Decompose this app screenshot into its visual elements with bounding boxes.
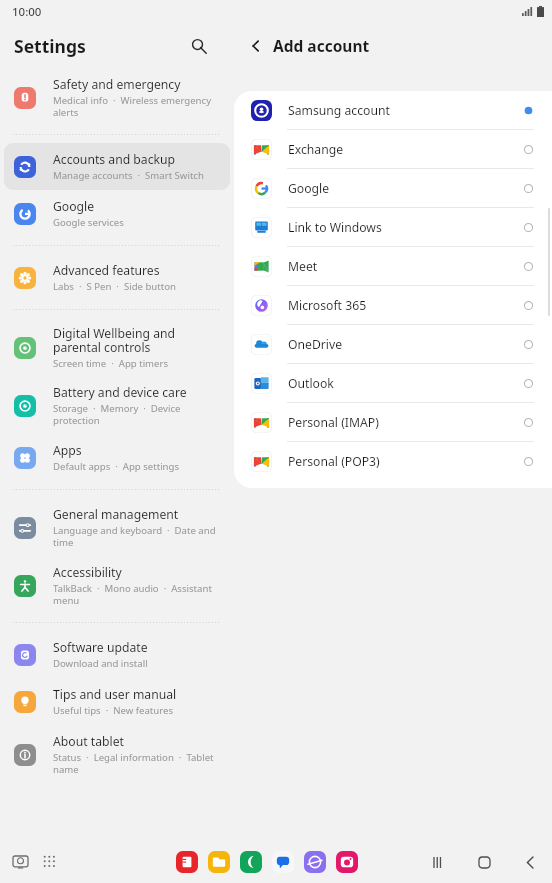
button[interactable]: Microsoft 365 (234, 286, 552, 324)
staticText: Add account (273, 35, 370, 56)
staticText: Meet (288, 258, 318, 275)
button[interactable]: files (208, 851, 230, 873)
button[interactable]: Personal (POP3) (234, 442, 552, 480)
button[interactable]: Safety and emergency (4, 68, 230, 126)
button[interactable]: About tablet (4, 725, 230, 783)
button[interactable]: camera (336, 851, 358, 873)
button[interactable]: Outlook (234, 364, 552, 402)
staticText: Software update (53, 639, 148, 656)
staticText: Language and keyboard · Date and time (53, 524, 222, 549)
staticText: Outlook (288, 375, 334, 392)
button[interactable]: Advanced features (4, 254, 230, 301)
button[interactable]: Tips and user manual (4, 678, 230, 725)
staticText: OneDrive (288, 336, 343, 353)
staticText: Manage accounts · Smart Switch (53, 169, 204, 182)
button[interactable]: Apps (38, 850, 62, 874)
button[interactable]: phone (240, 851, 262, 873)
button[interactable]: Apps (4, 434, 230, 481)
button[interactable]: OneDrive (234, 325, 552, 363)
staticText: Accessibility (53, 564, 122, 581)
staticText: Screen time · App timers (53, 357, 169, 370)
button[interactable]: messages (272, 851, 294, 873)
staticText: Battery and device care (53, 384, 187, 401)
staticText: Google (53, 198, 95, 215)
button[interactable]: Battery and device care (4, 376, 230, 434)
staticText: Personal (POP3) (288, 453, 380, 470)
button[interactable]: Exchange (234, 130, 552, 168)
staticText: Advanced features (53, 262, 160, 279)
staticText: Exchange (288, 141, 344, 158)
button[interactable]: General management (4, 498, 230, 556)
staticText: Safety and emergency (53, 76, 181, 93)
button[interactable]: Personal (IMAP) (234, 403, 552, 441)
staticText: Google (288, 180, 330, 197)
staticText: Settings (14, 34, 86, 58)
staticText: Accounts and backup (53, 151, 176, 168)
staticText: Link to Windows (288, 219, 382, 236)
button[interactable]: Google (4, 190, 230, 237)
staticText: Storage · Memory · Device protection (53, 402, 222, 427)
staticText: Labs · S Pen · Side button (53, 280, 176, 293)
staticText: 10:00 (12, 4, 42, 20)
button[interactable]: Back (518, 850, 542, 874)
button[interactable]: Digital Wellbeing and parental controls (4, 318, 230, 376)
staticText: Samsung account (288, 102, 390, 119)
staticText: Default apps · App settings (53, 460, 180, 473)
staticText: Medical info · Wireless emergency alerts (53, 94, 222, 119)
button[interactable]: Back (246, 35, 370, 56)
staticText: About tablet (53, 733, 124, 750)
staticText: Microsoft 365 (288, 297, 367, 314)
staticText: Apps (53, 442, 82, 459)
staticText: Useful tips · New features (53, 704, 174, 717)
button[interactable]: Google (234, 169, 552, 207)
staticText: Tips and user manual (53, 686, 177, 703)
staticText: Status · Legal information · Tablet name (53, 751, 222, 776)
staticText: Personal (IMAP) (288, 414, 379, 431)
button[interactable]: Recents (8, 850, 32, 874)
staticText: TalkBack · Mono audio · Assistant menu (53, 582, 222, 607)
button[interactable]: notes (176, 851, 198, 873)
button[interactable]: Meet (234, 247, 552, 285)
button[interactable]: Accounts and backup (4, 143, 230, 190)
button[interactable]: Link to Windows (234, 208, 552, 246)
button[interactable]: Accessibility (4, 556, 230, 614)
button[interactable]: Recent apps (426, 850, 450, 874)
staticText: Download and install (53, 657, 148, 670)
button[interactable]: Search (186, 33, 212, 59)
staticText: Google services (53, 216, 124, 229)
button[interactable]: internet (304, 851, 326, 873)
staticText: Digital Wellbeing and parental controls (53, 325, 222, 356)
button[interactable]: Home (472, 850, 496, 874)
staticText: General management (53, 506, 179, 523)
button[interactable]: Software update (4, 631, 230, 678)
button[interactable]: Samsung account (234, 91, 552, 129)
